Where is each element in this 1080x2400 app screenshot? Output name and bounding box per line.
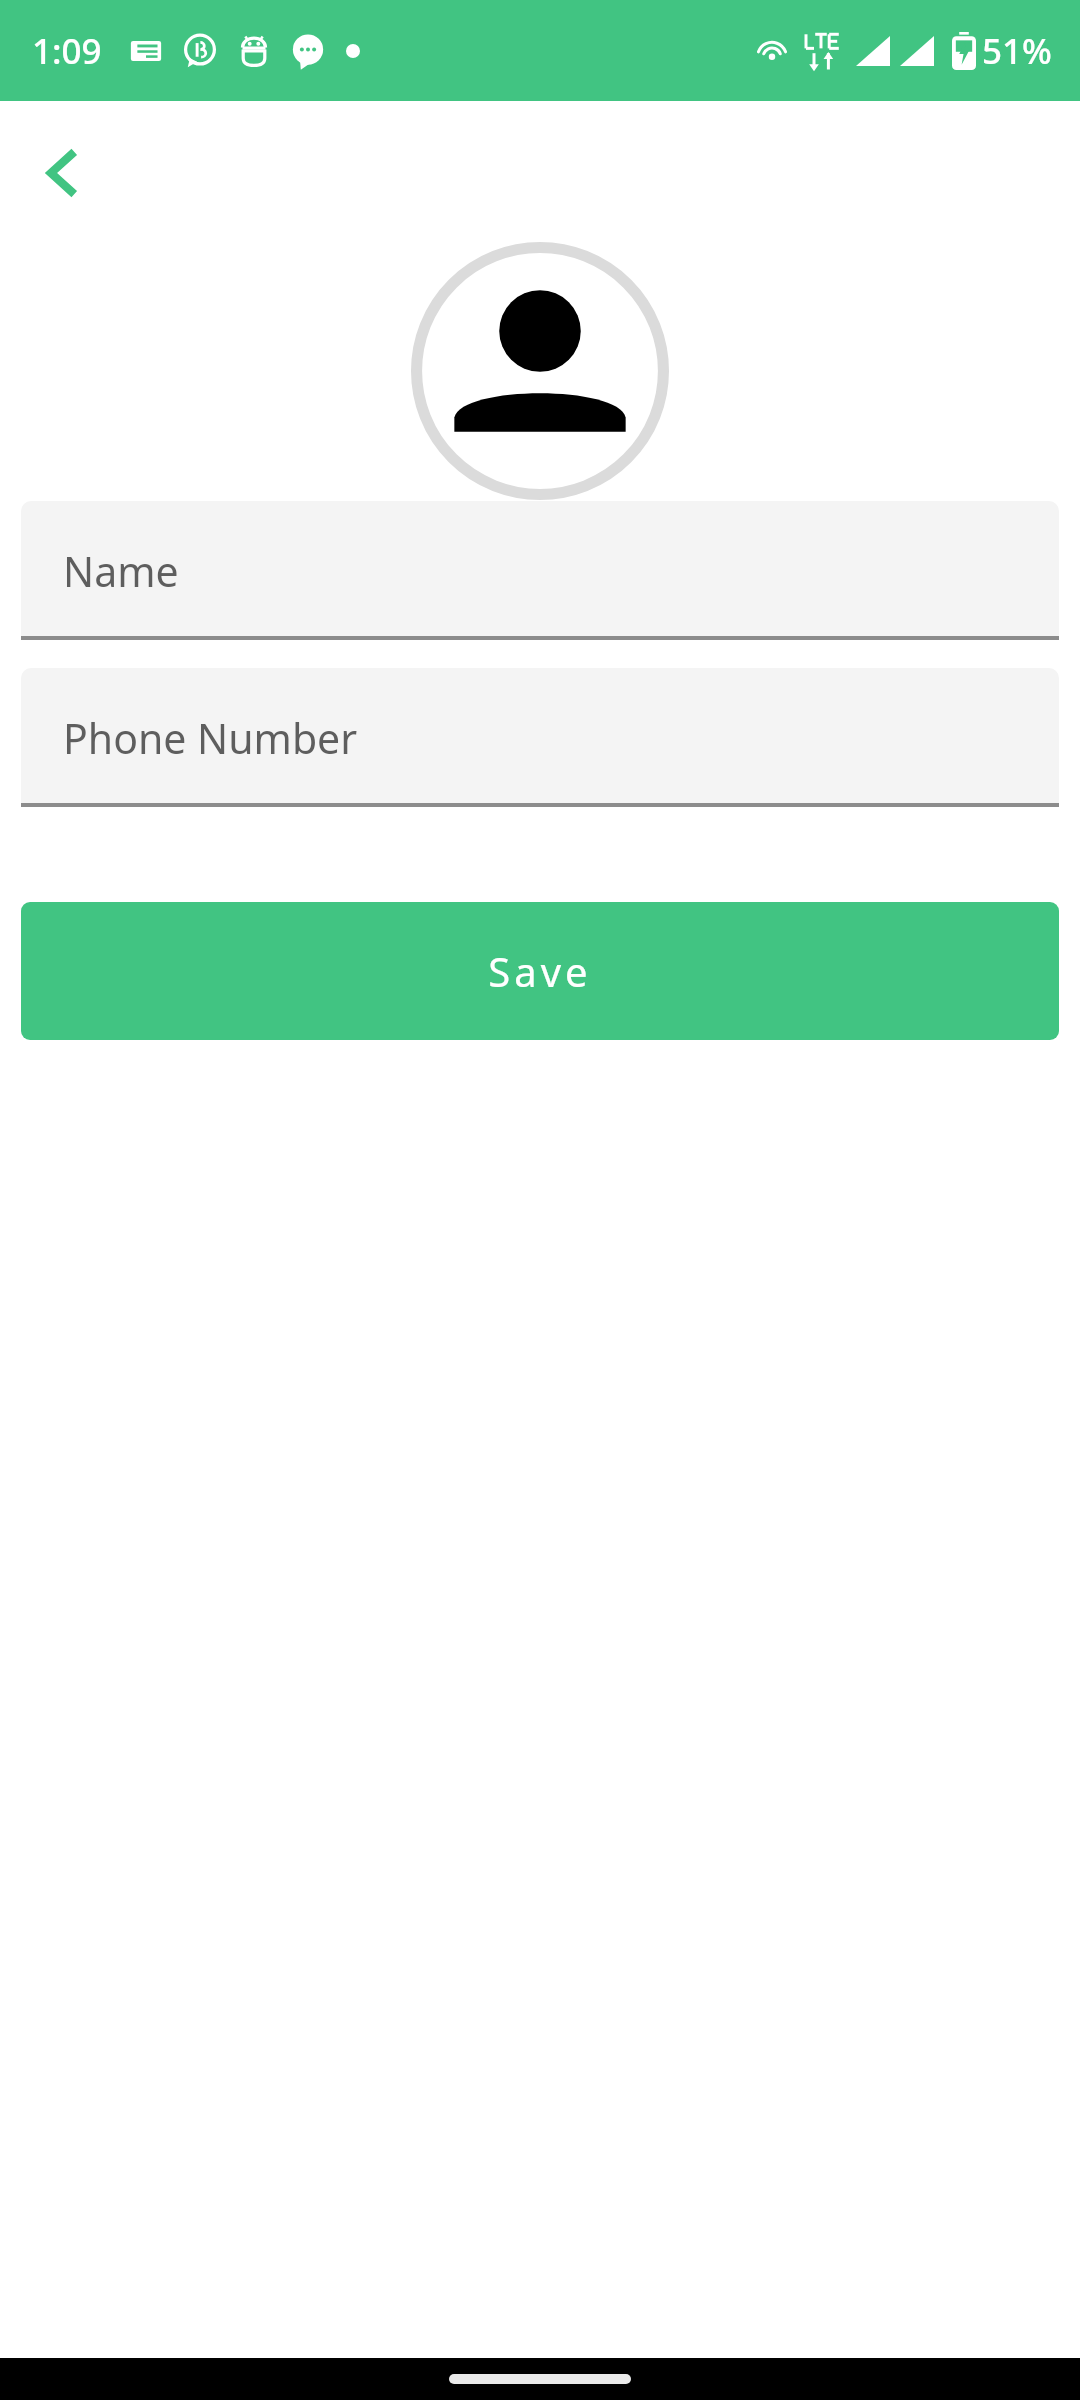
staticText: Save [488,944,592,998]
button[interactable]: Save [21,902,1059,1040]
staticText: Phone Number [63,710,358,766]
staticText: 1:09 [32,27,102,75]
staticText: Name [63,543,179,599]
button[interactable]: Back [14,125,110,221]
button[interactable]: Phone Number [21,668,1059,807]
staticText: 51% [982,27,1052,75]
button[interactable]: Name [21,501,1059,640]
